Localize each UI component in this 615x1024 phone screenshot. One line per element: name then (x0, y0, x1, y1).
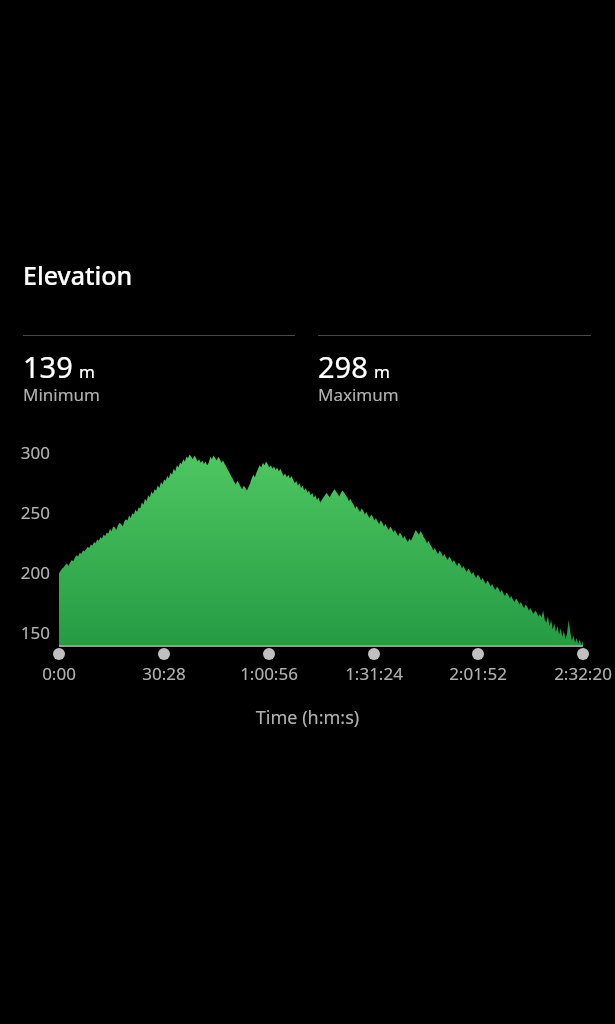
staticText: 139 (23, 347, 73, 386)
staticText: m (374, 360, 390, 383)
staticText: m (79, 360, 95, 383)
staticText: 250 (9, 501, 50, 524)
staticText: 2:01:52 (430, 662, 526, 685)
staticText: Maximum (318, 383, 399, 406)
staticText: Elevation (23, 258, 133, 292)
button[interactable]: 139 (23, 334, 295, 410)
button[interactable]: Elevation profile chart (59, 440, 583, 646)
staticText: 1:31:24 (326, 662, 422, 685)
staticText: 0:00 (11, 662, 107, 685)
staticText: 298 (318, 347, 368, 386)
staticText: Time (h:m:s) (0, 705, 615, 730)
staticText: Minimum (23, 383, 100, 406)
staticText: 30:28 (116, 662, 212, 685)
staticText: 300 (9, 441, 50, 464)
staticText: 1:00:56 (221, 662, 317, 685)
staticText: 150 (9, 621, 50, 644)
staticText: 2:32:20 (535, 662, 615, 685)
staticText: 200 (9, 561, 50, 584)
button[interactable]: 298 (318, 334, 591, 410)
